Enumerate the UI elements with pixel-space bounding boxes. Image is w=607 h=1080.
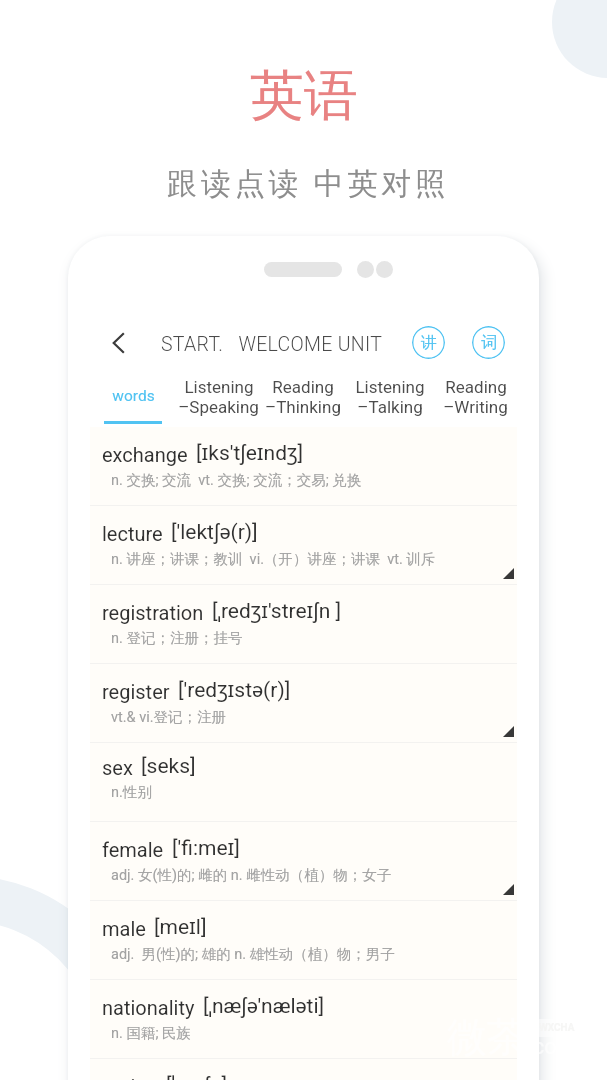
staticText: n. 国籍; 民族 [111,1024,192,1042]
staticText: 跟读点读 中英对照 [167,165,449,203]
staticText: WXCHA [539,1022,575,1034]
staticText: words [112,387,155,405]
staticText: –Thinking [265,397,341,417]
staticText: ['redʒɪstə(r)] [178,675,291,704]
staticText: male [102,917,146,940]
staticText: 词 [481,333,497,353]
button[interactable]: nation [90,1059,517,1080]
staticText: [ˌredʒɪ'streɪʃn ] [212,596,342,625]
button[interactable]: 讲 [412,326,445,359]
button[interactable]: sex [90,743,517,822]
staticText: nation [102,1075,158,1080]
staticText: –Talking [357,397,423,417]
staticText: registration [102,601,204,624]
staticText: adj. 女(性)的; 雌的 n. 雌性动（植）物；女子 [111,866,392,884]
button[interactable]: words [90,367,176,427]
button[interactable]: lecture [90,506,517,585]
staticText: [ˈneɪʃn] [166,1070,227,1080]
staticText: vt.& vi.登记；注册 [111,708,227,726]
button[interactable]: register [90,664,517,743]
staticText: n. 登记；注册；挂号 [111,629,243,647]
staticText: Reading [272,377,334,397]
staticText: nationality [102,996,195,1019]
staticText: female [102,838,164,861]
staticText: lecture [102,522,163,545]
staticText: n.性别 [111,783,152,801]
button[interactable]: exchange [90,427,517,506]
staticText: sex [102,756,133,779]
staticText: 讲 [421,333,437,353]
button[interactable]: Back [106,330,132,356]
staticText: register [102,680,170,703]
button[interactable]: Listening [175,367,261,427]
staticText: exchange [102,443,188,466]
staticText: [meɪl] [154,912,207,941]
button[interactable]: Reading [260,367,346,427]
staticText: ['fi:meɪ] [172,833,240,862]
button[interactable]: Reading [432,367,518,427]
button[interactable]: Listening [347,367,433,427]
button[interactable]: female [90,822,517,901]
staticText: –Speaking [178,397,259,417]
staticText: –Writing [443,397,508,417]
staticText: [seks] [141,754,196,779]
staticText: n. 交换; 交流 vt. 交换; 交流；交易; 兑换 [111,471,362,489]
button[interactable]: nationality [90,980,517,1059]
staticText: START. WELCOME UNIT [161,333,383,356]
button[interactable]: male [90,901,517,980]
staticText: [ɪks'tʃeɪndʒ] [196,438,304,467]
staticText: Listening [184,377,254,397]
staticText: 英语 [250,62,358,130]
staticText: [ˌnæʃə'næləti] [203,991,325,1020]
staticText: Listening [355,377,425,397]
staticText: n. 讲座；讲课；教训 vi.（开）讲座；讲课 vt. 训斥 [111,550,436,568]
button[interactable]: 词 [472,326,505,359]
staticText: adj. 男(性)的; 雄的 n. 雄性动（植）物；男子 [111,945,395,963]
staticText: Reading [445,377,507,397]
staticText: ['lektʃə(r)] [171,517,258,546]
staticText: .com [527,1034,577,1060]
button[interactable]: registration [90,585,517,664]
